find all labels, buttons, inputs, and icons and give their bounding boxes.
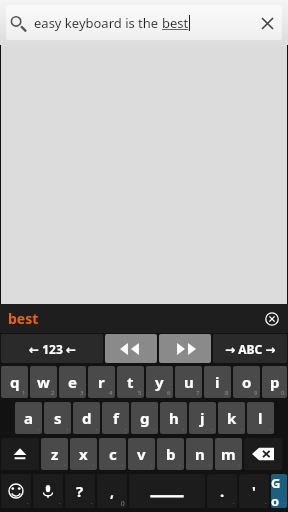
staticText: Go	[271, 474, 287, 508]
staticText: ·	[241, 425, 243, 433]
staticText: ·	[233, 499, 235, 507]
button[interactable]: v	[128, 438, 155, 470]
button[interactable]: a	[15, 402, 42, 434]
button[interactable]: Shift	[1, 438, 39, 470]
staticText: easy keyboard is the	[34, 14, 162, 32]
staticText: c	[109, 444, 117, 464]
button[interactable]: b	[157, 438, 184, 470]
button[interactable]: n	[186, 438, 213, 470]
staticText: best	[8, 309, 39, 328]
staticText: .	[220, 481, 225, 501]
staticText: 4	[109, 389, 113, 397]
button[interactable]: h	[160, 402, 187, 434]
staticText: best	[162, 14, 189, 32]
button[interactable]: ← 123 ←	[1, 334, 103, 363]
staticText: r	[98, 372, 105, 392]
staticText: ()	[121, 499, 125, 507]
staticText: v	[137, 444, 146, 464]
button[interactable]: Close suggestions	[262, 309, 282, 329]
button[interactable]: Backspace	[244, 438, 282, 470]
button[interactable]: k	[218, 402, 245, 434]
button[interactable]: l	[247, 402, 274, 434]
button[interactable]: y	[146, 366, 173, 398]
staticText: 0	[281, 389, 285, 397]
staticText: ·	[212, 425, 214, 433]
staticText: q	[10, 372, 20, 392]
staticText: f	[113, 408, 119, 428]
button[interactable]: Voice input	[33, 474, 63, 508]
button[interactable]: Emoji	[1, 474, 31, 508]
staticText: ·	[154, 425, 156, 433]
button[interactable]: p	[262, 366, 287, 398]
staticText: 3	[80, 389, 84, 397]
button[interactable]: d	[73, 402, 100, 434]
button[interactable]: ,	[97, 474, 127, 508]
staticText: l	[258, 408, 263, 428]
button[interactable]: ?	[65, 474, 95, 508]
staticText: j	[200, 408, 205, 428]
button[interactable]: '	[239, 474, 269, 508]
staticText: ·	[38, 425, 40, 433]
staticText: ·	[283, 499, 285, 507]
staticText: ·	[27, 499, 29, 507]
button[interactable]: r	[88, 366, 115, 398]
staticText: ?	[76, 481, 84, 501]
button[interactable]: Space	[129, 474, 205, 508]
button[interactable]: o	[233, 366, 260, 398]
staticText: ← 123 ←	[29, 341, 76, 357]
button[interactable]: i	[204, 366, 231, 398]
staticText: ·	[64, 461, 66, 469]
staticText: m	[221, 444, 236, 464]
staticText: k	[227, 408, 237, 428]
staticText: ·	[96, 425, 98, 433]
staticText: 9	[254, 389, 258, 397]
button[interactable]: g	[131, 402, 158, 434]
staticText: ·	[59, 499, 61, 507]
button[interactable]: t	[117, 366, 144, 398]
button[interactable]: easy keyboard is the	[6, 5, 282, 40]
staticText: ·	[91, 499, 93, 507]
button[interactable]: Cursor left	[105, 334, 157, 363]
staticText: u	[184, 372, 194, 392]
staticText: ·	[151, 461, 153, 469]
button[interactable]: s	[44, 402, 71, 434]
button[interactable]: q	[1, 366, 28, 398]
staticText: ·	[122, 461, 124, 469]
staticText: ·	[270, 425, 272, 433]
staticText: d	[82, 408, 92, 428]
staticText: a	[24, 408, 33, 428]
button[interactable]: z	[41, 438, 68, 470]
button[interactable]: e	[59, 366, 86, 398]
staticText: w	[37, 372, 50, 392]
staticText: ·	[209, 461, 211, 469]
staticText: ·	[125, 425, 127, 433]
button[interactable]: Clear	[252, 8, 282, 38]
staticText: 6	[167, 389, 171, 397]
button[interactable]: → ABC →	[213, 334, 287, 363]
button[interactable]: u	[175, 366, 202, 398]
button[interactable]: f	[102, 402, 129, 434]
button[interactable]: x	[70, 438, 97, 470]
button[interactable]: j	[189, 402, 216, 434]
staticText: '	[252, 482, 256, 501]
staticText: 7	[196, 389, 200, 397]
staticText: b	[166, 444, 176, 464]
staticText: → ABC →	[225, 341, 276, 357]
staticText: o	[242, 372, 252, 392]
staticText: 2	[51, 389, 55, 397]
button[interactable]: Cursor right	[159, 334, 211, 363]
button[interactable]: Go	[271, 474, 287, 508]
staticText: g	[140, 408, 150, 428]
staticText: h	[169, 408, 179, 428]
staticText: ·	[265, 499, 267, 507]
staticText: ,	[110, 482, 114, 501]
staticText: 1	[22, 389, 26, 397]
button[interactable]: w	[30, 366, 57, 398]
button[interactable]: .	[207, 474, 237, 508]
staticText: ·	[180, 461, 182, 469]
button[interactable]: c	[99, 438, 126, 470]
button[interactable]: m	[215, 438, 242, 470]
staticText: z	[51, 444, 59, 464]
staticText: p	[270, 372, 280, 392]
staticText: ·	[183, 425, 185, 433]
